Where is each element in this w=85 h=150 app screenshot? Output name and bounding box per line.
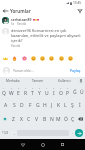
button[interactable]: ?123 xyxy=(0,126,11,139)
button[interactable]: Emoji xyxy=(68,56,73,61)
button[interactable]: 2 xyxy=(8,85,15,98)
staticText: 0 xyxy=(67,87,69,90)
staticText: Ç xyxy=(71,116,75,123)
button[interactable]: Filter xyxy=(75,6,85,15)
button[interactable]: 9 xyxy=(57,85,64,98)
button[interactable]: Backspace xyxy=(76,112,85,126)
button[interactable]: X xyxy=(17,112,25,126)
staticText: Merhaba xyxy=(6,79,20,83)
button[interactable]: Recents xyxy=(57,139,68,150)
button[interactable]: 3 xyxy=(15,85,22,98)
button[interactable]: Voice input xyxy=(77,77,85,85)
staticText: 3 xyxy=(18,87,20,90)
staticText: Yanıtla xyxy=(11,44,21,48)
button[interactable]: N xyxy=(48,112,55,126)
button[interactable]: Ü xyxy=(78,85,85,98)
staticText: Tamam xyxy=(32,79,44,83)
button[interactable]: S xyxy=(10,98,18,112)
button[interactable]: Emoji xyxy=(31,56,36,61)
button[interactable]: Emoji xyxy=(59,56,64,61)
staticText: 5s xyxy=(11,22,15,26)
staticText: E xyxy=(17,90,20,97)
button[interactable]: Comma xyxy=(11,126,17,139)
button[interactable]: K xyxy=(55,98,62,112)
button[interactable]: Emoji fire xyxy=(12,56,17,61)
button[interactable]: İ xyxy=(76,98,83,112)
button[interactable]: 5 xyxy=(29,85,36,98)
button[interactable]: Yanıtla xyxy=(17,22,27,26)
button[interactable]: H xyxy=(41,98,48,112)
staticText: 2 xyxy=(11,87,13,90)
staticText: 9 xyxy=(60,87,62,90)
button[interactable]: B xyxy=(41,112,48,126)
button[interactable]: Emoji xyxy=(49,56,54,61)
button[interactable]: D xyxy=(18,98,26,112)
button[interactable]: Back xyxy=(17,139,28,150)
button[interactable]: 6 xyxy=(36,85,43,98)
button[interactable]: Kullanıcı xyxy=(51,77,77,85)
button[interactable]: Z xyxy=(9,112,17,126)
button[interactable]: Yanıtla xyxy=(11,44,21,48)
button[interactable]: V xyxy=(33,112,41,126)
button[interactable]: F xyxy=(26,98,34,112)
button[interactable]: 4 xyxy=(22,85,29,98)
staticText: 1 xyxy=(3,87,5,90)
staticText: ?123 xyxy=(2,131,9,135)
staticText: 5 xyxy=(32,87,34,90)
staticText: Z xyxy=(12,116,15,123)
button[interactable]: Ö xyxy=(62,112,69,126)
staticText: R xyxy=(24,90,28,97)
staticText: J xyxy=(51,102,53,109)
staticText: H xyxy=(43,102,47,109)
staticText: Ğ xyxy=(73,89,77,96)
staticText: denizzer96 Konsantresi en çok kazanılan,… xyxy=(11,28,83,43)
button[interactable]: A xyxy=(2,98,10,112)
button[interactable]: 7 xyxy=(43,85,50,98)
staticText: X xyxy=(20,116,23,123)
button[interactable]: 8 xyxy=(50,85,57,98)
staticText: Q xyxy=(2,90,6,97)
button[interactable]: 1 xyxy=(0,85,8,98)
button[interactable]: Emoji xyxy=(40,56,45,61)
button[interactable]: Send xyxy=(75,129,83,137)
button[interactable]: Ğ xyxy=(71,85,78,98)
staticText: K xyxy=(57,102,61,109)
button[interactable]: Merhaba xyxy=(0,77,25,85)
staticText: 6 xyxy=(39,87,41,90)
staticText: Yorum ekle... xyxy=(13,68,34,73)
staticText: Y xyxy=(38,90,41,97)
button[interactable]: Ş xyxy=(69,98,76,112)
staticText: Yorumlar xyxy=(10,8,31,14)
button[interactable]: Emoji crown xyxy=(3,56,8,61)
button[interactable]: G xyxy=(34,98,41,112)
button[interactable]: Ç xyxy=(69,112,76,126)
button[interactable]: L xyxy=(62,98,69,112)
staticText: O xyxy=(59,90,63,97)
staticText: S xyxy=(13,102,16,109)
button[interactable]: serhatcan89 xyxy=(2,17,83,26)
staticText: M xyxy=(56,116,61,123)
staticText: P xyxy=(66,90,70,97)
button[interactable]: C xyxy=(25,112,33,126)
button[interactable]: Paylaş xyxy=(69,67,82,74)
button[interactable]: Home xyxy=(37,139,48,150)
staticText: Paylaş xyxy=(70,68,81,73)
staticText: U xyxy=(45,90,49,97)
button[interactable]: M xyxy=(55,112,62,126)
button[interactable]: denizzer96 Konsantresi en çok kazanılan,… xyxy=(2,28,83,48)
button[interactable]: Emoji flower xyxy=(22,56,27,61)
staticText: G xyxy=(36,102,40,109)
staticText: C xyxy=(27,116,31,123)
button[interactable]: 0 xyxy=(64,85,71,98)
staticText: Kullanıcı xyxy=(58,79,71,83)
staticText: 4 xyxy=(25,87,27,90)
staticText: 7 xyxy=(46,87,48,90)
button[interactable]: Shift xyxy=(0,112,9,126)
button[interactable]: J xyxy=(48,98,55,112)
button[interactable]: Tamam xyxy=(25,77,51,85)
button[interactable]: Back xyxy=(0,6,10,15)
staticText: A xyxy=(4,102,8,109)
staticText: B xyxy=(43,116,47,123)
